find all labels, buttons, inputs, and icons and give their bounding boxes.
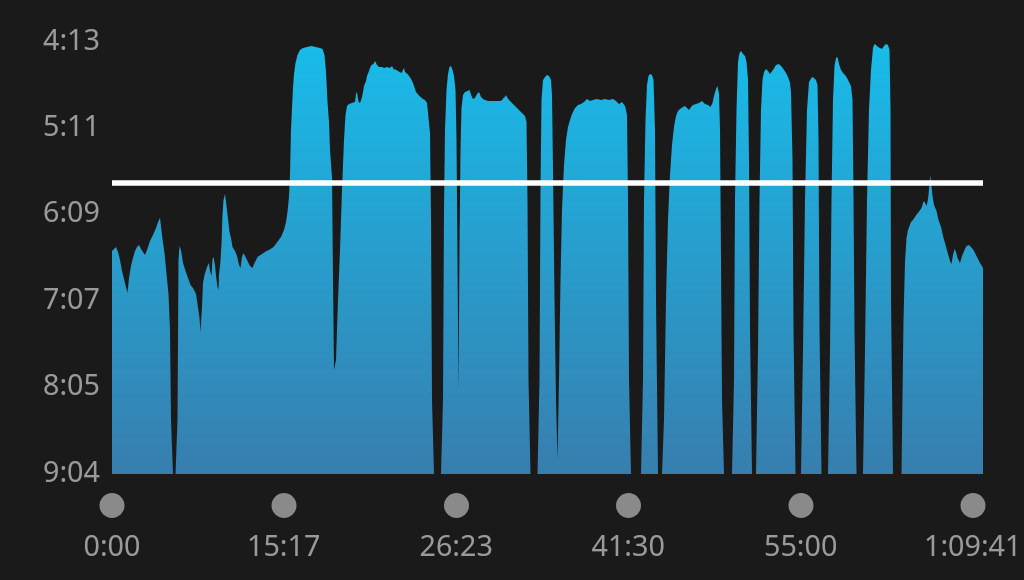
button[interactable]: Pace chart	[0, 0, 1024, 580]
